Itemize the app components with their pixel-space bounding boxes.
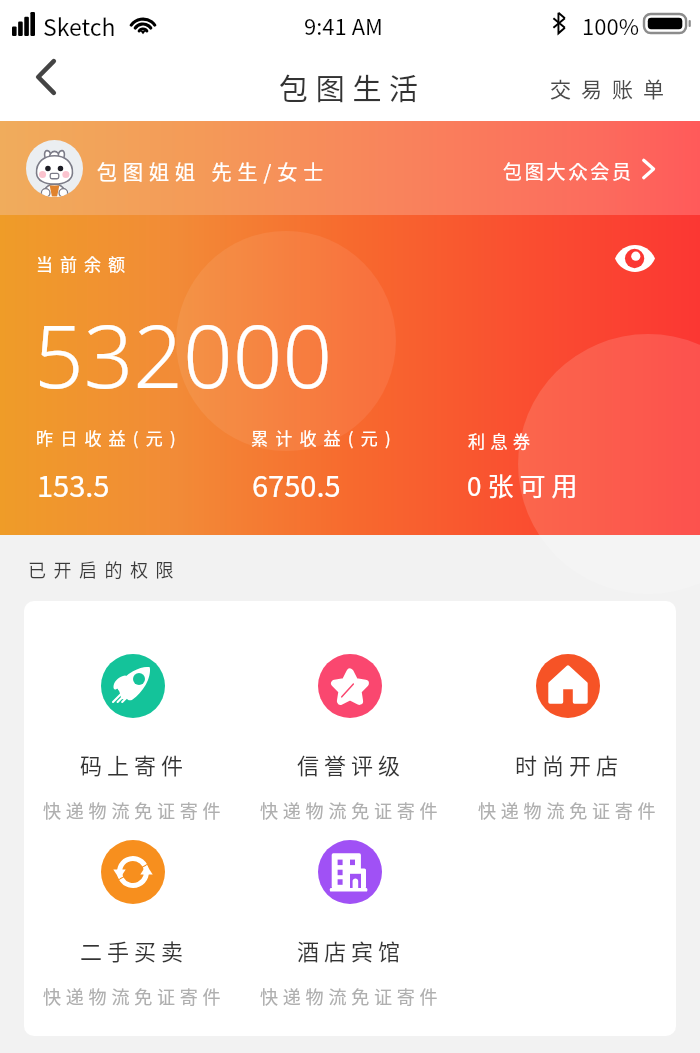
button[interactable]: 包图姐姐 先生/女士: [0, 121, 700, 215]
staticText: 153.5: [37, 463, 110, 505]
staticText: 包图生活: [279, 66, 426, 108]
staticText: 累计收益(元): [251, 425, 398, 450]
staticText: 快递物流免证寄件: [260, 797, 443, 823]
staticText: 码上寄件: [80, 748, 189, 780]
staticText: 0张可用: [467, 466, 584, 504]
staticText: 快递物流免证寄件: [260, 983, 443, 1009]
staticText: 9:41 AM: [304, 9, 383, 41]
staticText: 交易账单: [550, 73, 674, 103]
staticText: 100%: [582, 9, 639, 41]
button[interactable]: Back: [14, 52, 76, 121]
staticText: 包图大众会员: [503, 157, 634, 185]
other: Member level: [641, 158, 656, 180]
staticText: 二手买卖: [80, 934, 189, 966]
staticText: Sketch: [43, 9, 116, 42]
staticText: 快递物流免证寄件: [43, 797, 226, 823]
button[interactable]: 酒店宾馆: [241, 787, 458, 1009]
staticText: 包图姐姐 先生/女士: [97, 157, 330, 186]
staticText: 已开启的权限: [28, 556, 181, 582]
button[interactable]: 二手买卖: [24, 787, 241, 1009]
staticText: 昨日收益(元): [36, 425, 183, 450]
staticText: 快递物流免证寄件: [43, 983, 226, 1009]
staticText: 快递物流免证寄件: [478, 797, 661, 823]
button[interactable]: 码上寄件: [24, 601, 241, 823]
staticText: 酒店宾馆: [297, 934, 406, 966]
button[interactable]: 交易账单: [528, 52, 685, 121]
staticText: 时尚开店: [515, 748, 624, 780]
staticText: 信誉评级: [297, 748, 406, 780]
staticText: 利息券: [468, 428, 536, 453]
staticText: 当前余额: [36, 251, 132, 276]
button[interactable]: Toggle balance visibility: [611, 234, 659, 282]
button[interactable]: 信誉评级: [241, 601, 458, 823]
staticText: 532000: [34, 295, 333, 413]
button[interactable]: 时尚开店: [459, 601, 676, 823]
staticText: 6750.5: [252, 463, 341, 505]
